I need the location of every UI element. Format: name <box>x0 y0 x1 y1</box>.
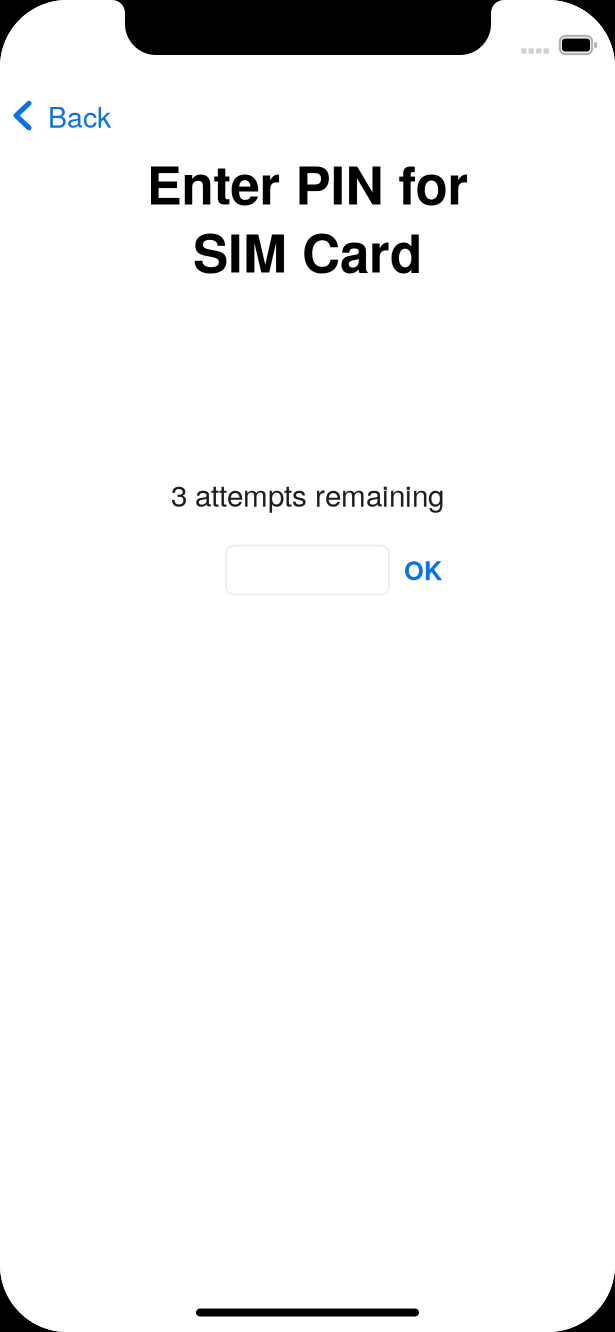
staticText: SIM Card <box>193 213 422 289</box>
staticText: OK <box>404 552 442 588</box>
button[interactable]: Back <box>0 83 125 148</box>
button[interactable]: OK <box>396 542 450 598</box>
staticText: Back <box>48 95 111 136</box>
staticText: 3 attempts remaining <box>171 473 444 515</box>
staticText: Enter PIN for <box>146 145 468 221</box>
